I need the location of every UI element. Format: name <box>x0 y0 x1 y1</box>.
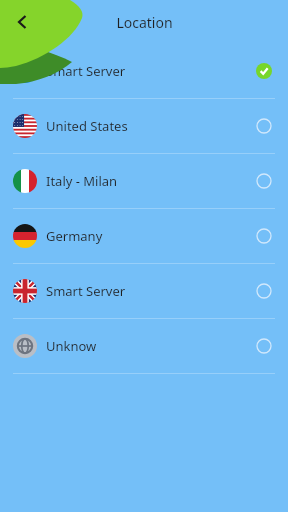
button[interactable]: Smart Server <box>0 44 288 98</box>
button[interactable]: Germany <box>0 209 288 263</box>
staticText: Smart Server <box>46 282 126 300</box>
staticText: Italy - Milan <box>46 172 118 190</box>
staticText: Smart Server <box>46 62 126 80</box>
staticText: Location <box>116 13 173 32</box>
button[interactable]: Back <box>0 0 44 44</box>
staticText: Germany <box>46 227 103 245</box>
button[interactable]: Smart Server <box>0 264 288 318</box>
other: Back <box>0 0 44 44</box>
button[interactable]: Unknow <box>0 319 288 373</box>
staticText: United States <box>46 117 128 135</box>
staticText: Unknow <box>46 337 97 355</box>
button[interactable]: United States <box>0 99 288 153</box>
button[interactable]: Italy - Milan <box>0 154 288 208</box>
